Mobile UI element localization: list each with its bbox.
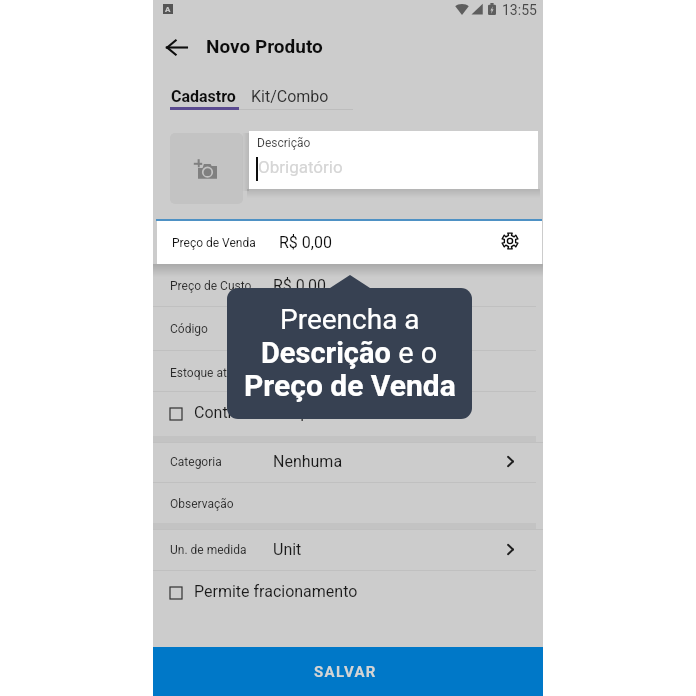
staticText: R$ 0,00: [273, 276, 326, 295]
staticText: A: [165, 5, 171, 14]
button[interactable]: Controlar estoque: [153, 391, 543, 434]
staticText: Permite fracionamento: [194, 582, 358, 601]
button[interactable]: Preço de Custo: [153, 264, 543, 307]
staticText: Cadastro: [171, 87, 236, 106]
staticText: Estoque atual: [170, 366, 243, 380]
staticText: Un. de medida: [170, 543, 247, 557]
button[interactable]: Código: [153, 307, 543, 350]
staticText: Preço de Custo: [170, 279, 252, 293]
button[interactable]: Observação: [153, 482, 543, 525]
button[interactable]: SALVAR: [153, 647, 543, 696]
staticText: Categoria: [170, 455, 222, 469]
staticText: Kit/Combo: [251, 87, 329, 106]
button[interactable]: Categoria: [153, 440, 543, 483]
staticText: Preço de Venda: [244, 368, 456, 403]
button[interactable]: Preço de Venda: [157, 221, 542, 264]
staticText: 13:55: [502, 2, 537, 18]
button[interactable]: Add photo: [170, 133, 243, 204]
button[interactable]: Cadastro: [171, 87, 236, 106]
staticText: SALVAR: [314, 663, 377, 681]
staticText: Descrição: [261, 336, 391, 370]
staticText: e o: [391, 336, 438, 370]
staticText: Preço de Venda: [172, 236, 256, 250]
button[interactable]: Un. de medida: [153, 528, 543, 571]
button[interactable]: Descrição: [249, 131, 538, 189]
staticText: Código: [170, 322, 208, 336]
button[interactable]: Permite fracionamento: [153, 570, 543, 613]
staticText: Descrição: [257, 136, 311, 150]
button[interactable]: Estoque atual: [153, 351, 543, 394]
staticText: Preencha a: [280, 303, 420, 336]
staticText: R$ 0,00: [279, 233, 332, 252]
staticText: Obrigatório: [258, 157, 343, 177]
button[interactable]: Back: [158, 29, 194, 65]
button[interactable]: Kit/Combo: [251, 87, 329, 106]
staticText: Nenhuma: [273, 452, 343, 471]
staticText: Unit: [273, 540, 302, 559]
staticText: Controlar estoque: [194, 403, 322, 422]
staticText: Observação: [170, 497, 234, 511]
button[interactable]: Settings: [494, 225, 526, 257]
staticText: Novo Produto: [206, 35, 323, 57]
